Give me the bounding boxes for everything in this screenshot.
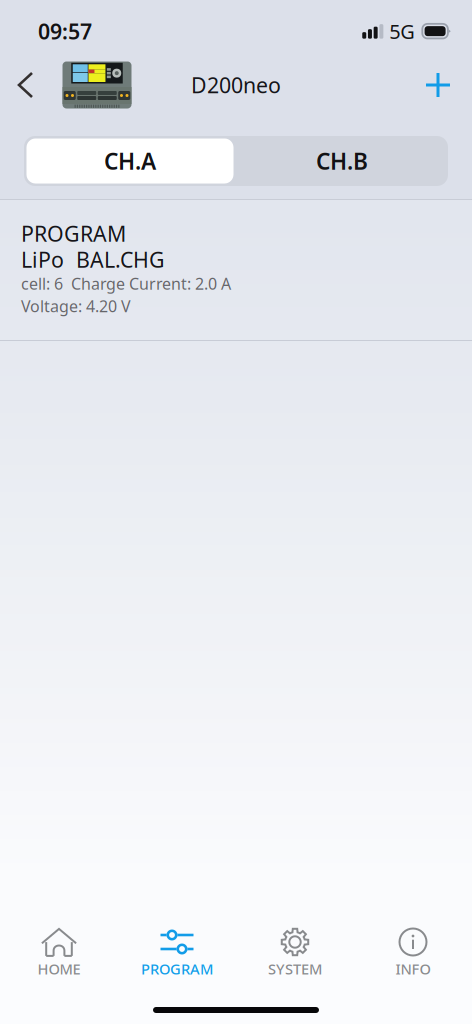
staticText: SYSTEM	[268, 959, 322, 978]
staticText: INFO	[395, 959, 430, 978]
staticText: cell: 6 Charge Current: 2.0 A	[21, 273, 231, 294]
staticText: CH.A	[104, 146, 156, 176]
button[interactable]: Add device	[416, 57, 460, 113]
button[interactable]: HOME	[0, 904, 118, 1001]
staticText: 5G	[389, 18, 415, 44]
staticText: PROGRAM	[21, 219, 126, 248]
button[interactable]: Back	[4, 57, 46, 113]
staticText: HOME	[37, 959, 80, 978]
button[interactable]: INFO	[354, 904, 472, 1001]
button[interactable]: SYSTEM	[236, 904, 354, 1001]
button[interactable]: PROGRAM	[118, 904, 236, 1001]
button[interactable]: CH.B	[236, 136, 448, 186]
staticText: PROGRAM	[141, 959, 213, 978]
staticText: D200neo	[191, 71, 281, 99]
button[interactable]: CH.A	[24, 136, 236, 186]
staticText: CH.B	[316, 146, 368, 176]
staticText: LiPo BAL.CHG	[21, 245, 165, 274]
staticText: Voltage: 4.20 V	[21, 295, 131, 317]
staticText: 09:57	[38, 17, 92, 45]
